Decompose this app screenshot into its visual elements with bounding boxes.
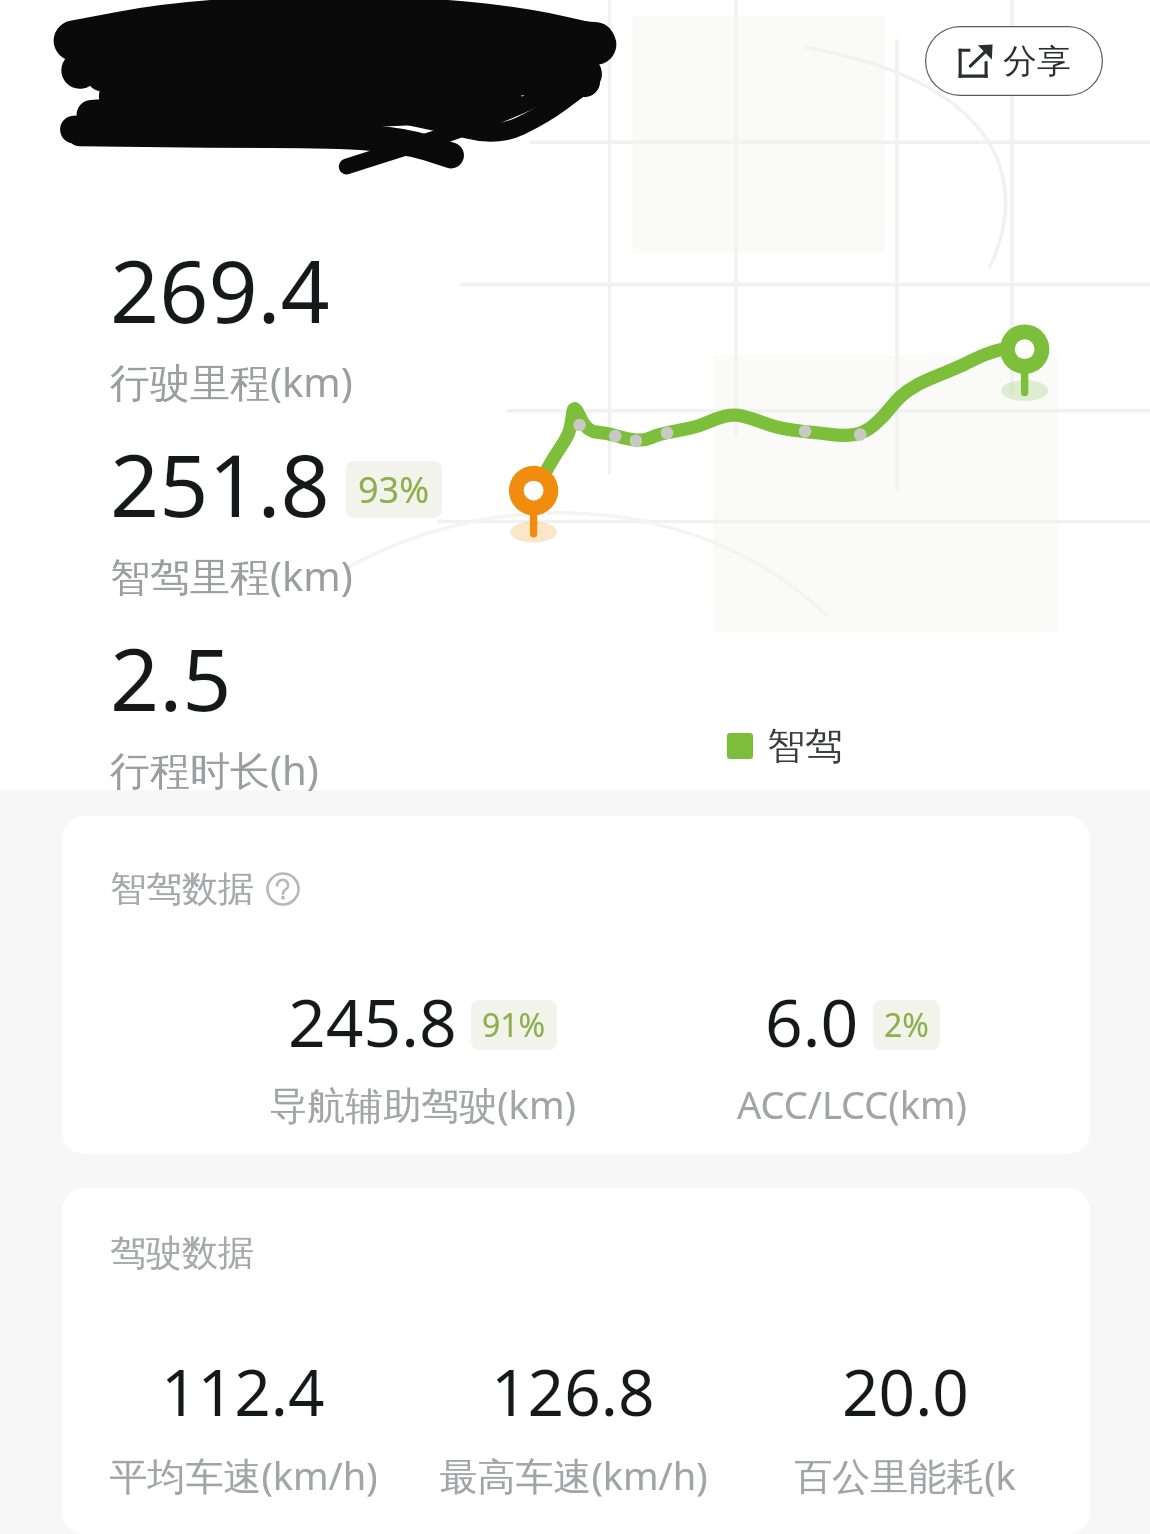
staticText: 112.4 [161,1348,325,1435]
staticText: 91% [482,1003,546,1047]
staticText: 126.8 [491,1348,655,1435]
staticText: 251.8 [110,425,330,542]
button[interactable]: 智驾 [727,722,843,770]
staticText: ACC/LCC(km) [737,1078,967,1130]
staticText: 驾驶数据 [110,1230,254,1275]
staticText: 最高车速(km/h) [439,1449,708,1501]
button[interactable]: 6.0 [622,976,1082,1130]
staticText: 20.0 [842,1348,969,1435]
button[interactable]: 269.4 [110,231,353,409]
button[interactable]: 126.8 [403,1348,743,1501]
button[interactable]: 112.4 [73,1348,413,1501]
button[interactable]: Help about smart driving data [266,872,300,906]
staticText: 行程时长(h) [110,742,319,797]
button[interactable]: 20.0 [735,1348,1075,1501]
staticText: 269.4 [110,231,330,348]
staticText: 平均车速(km/h) [109,1449,378,1501]
button[interactable]: 驾驶数据 [62,1188,1090,1534]
button[interactable]: 251.8 [110,425,442,603]
staticText: 6.0 [765,976,859,1066]
staticText: 93% [358,465,430,514]
staticText: 2.5 [110,619,232,736]
other: Share [958,43,994,79]
button[interactable]: Share [925,26,1103,96]
staticText: 导航辅助驾驶(km) [269,1078,576,1130]
button[interactable]: 2.5 [110,619,319,797]
staticText: 智驾 [767,722,843,770]
staticText: 智驾数据 [110,866,254,911]
staticText: 分享 [1003,40,1071,83]
staticText: 百公里能耗(k [794,1449,1016,1501]
staticText: 智驾里程(km) [110,548,353,603]
staticText: 行驶里程(km) [110,354,353,409]
staticText: 2% [884,1003,929,1047]
button[interactable]: 智驾数据 [62,816,1090,1154]
button[interactable]: 245.8 [192,976,652,1130]
staticText: 245.8 [288,976,457,1066]
